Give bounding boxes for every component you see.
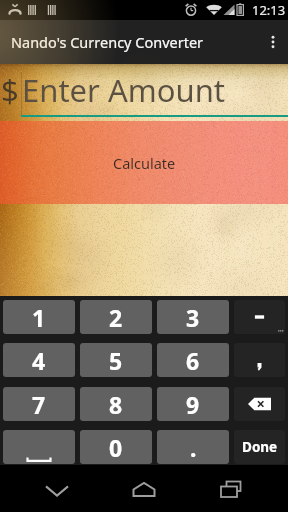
button[interactable]: 5: [80, 343, 152, 377]
button[interactable]: Calculate: [0, 121, 288, 204]
staticText: 7: [32, 389, 46, 420]
button[interactable]: 2: [80, 300, 152, 334]
staticText: 12:13: [252, 1, 286, 19]
button[interactable]: 1: [3, 300, 75, 334]
staticText: $: [1, 69, 19, 111]
button[interactable]: 9: [157, 387, 229, 421]
staticText: 8: [109, 389, 123, 420]
staticText: 4: [32, 345, 46, 376]
button[interactable]: Comma: [234, 343, 285, 377]
button[interactable]: 0: [80, 430, 152, 464]
button[interactable]: 3: [157, 300, 229, 334]
button[interactable]: 6: [157, 343, 229, 377]
staticText: .: [190, 432, 197, 463]
staticText: 1: [32, 302, 46, 333]
button[interactable]: Done: [234, 430, 285, 464]
button[interactable]: .: [157, 430, 229, 464]
button[interactable]: Home: [114, 465, 174, 512]
button[interactable]: Space: [3, 430, 75, 464]
staticText: 2: [109, 302, 123, 333]
staticText: 3: [186, 302, 200, 333]
staticText: Calculate: [113, 153, 176, 173]
staticText: 6: [186, 345, 200, 376]
button[interactable]: 8: [80, 387, 152, 421]
staticText: 0: [109, 432, 123, 463]
button[interactable]: More options: [258, 20, 288, 64]
staticText: Enter Amount: [22, 69, 225, 111]
staticText: 5: [109, 345, 123, 376]
button[interactable]: Minus: [234, 300, 285, 334]
button[interactable]: Backspace: [234, 387, 285, 421]
button[interactable]: 7: [3, 387, 75, 421]
button[interactable]: Back: [27, 465, 87, 512]
staticText: Nando's Currency Converter: [11, 32, 204, 52]
button[interactable]: 4: [3, 343, 75, 377]
staticText: 9: [186, 389, 200, 420]
button[interactable]: Recents: [201, 465, 261, 512]
staticText: Done: [242, 438, 278, 456]
